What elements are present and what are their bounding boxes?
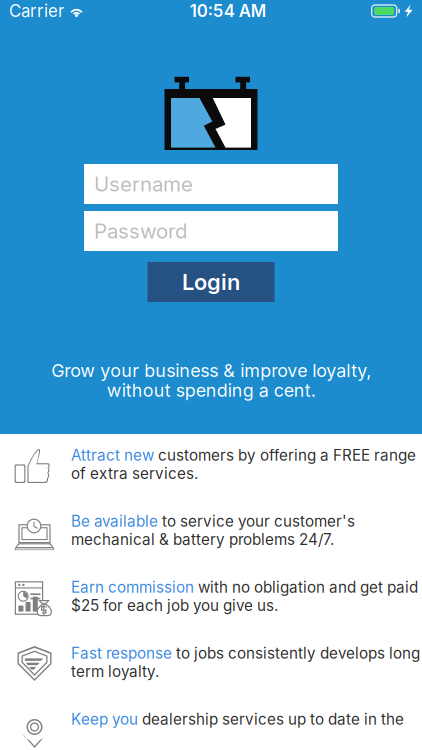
staticText: 10:54 AM xyxy=(190,1,266,21)
staticText: Be available to service your customer's … xyxy=(71,512,355,549)
staticText: Keep you dealership services up to date … xyxy=(71,710,404,728)
staticText: Username xyxy=(94,172,193,196)
button[interactable]: Login xyxy=(147,262,274,302)
staticText: Login xyxy=(182,269,240,295)
button[interactable]: Password xyxy=(84,211,338,251)
staticText: Earn commission with no obligation and g… xyxy=(71,578,418,615)
staticText: Attract new customers by offering a FREE… xyxy=(71,446,416,483)
staticText: Carrier xyxy=(9,1,64,21)
button[interactable]: Username xyxy=(84,164,338,204)
staticText: Password xyxy=(94,219,188,243)
staticText: Fast response to jobs consistently devel… xyxy=(71,644,420,681)
staticText: Grow your business & improve loyalty, wi… xyxy=(51,360,371,401)
